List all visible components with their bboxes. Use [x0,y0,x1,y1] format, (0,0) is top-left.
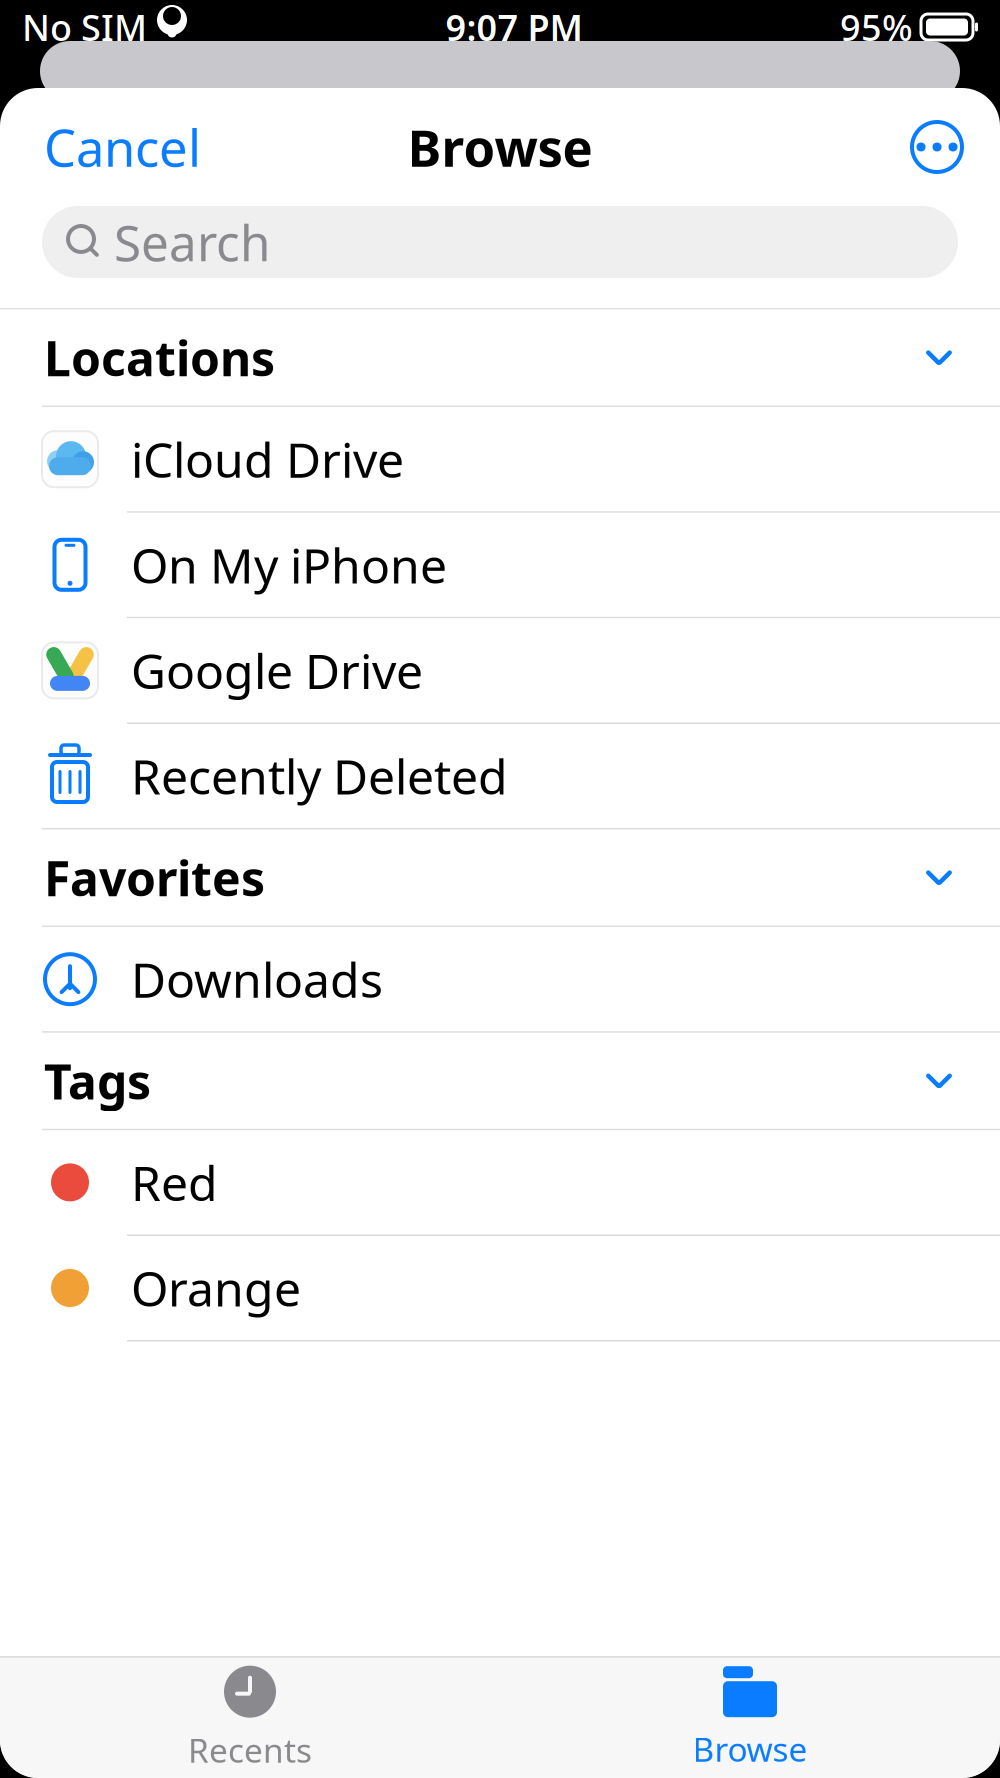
staticText: Red [131,1150,218,1214]
staticText: Cancel [44,113,201,181]
button[interactable]: Tags [0,1033,1000,1129]
staticText: Tags [44,1049,151,1113]
staticText: Favorites [44,846,265,909]
button[interactable]: More options [874,99,1000,195]
staticText: Google Drive [131,638,423,702]
staticText: Browse [692,1727,807,1771]
button[interactable]: Favorites [0,830,1000,926]
staticText: 9:07 PM [445,3,582,51]
staticText: Browse [407,113,592,181]
button[interactable]: Red [0,1130,1000,1234]
staticText: Downloads [131,947,383,1011]
button[interactable]: Orange [0,1236,1000,1340]
staticText: On My iPhone [131,533,447,597]
staticText: iCloud Drive [131,427,404,491]
button[interactable]: Browse [500,1658,1000,1778]
button[interactable]: Cancel [0,99,245,195]
button[interactable]: Recents [0,1658,500,1778]
button[interactable]: Google Drive [0,618,1000,722]
button[interactable]: On My iPhone [0,513,1000,617]
button[interactable]: Search [42,206,958,278]
staticText: Orange [131,1256,301,1320]
staticText: Recently Deleted [131,744,508,808]
button[interactable]: Downloads [0,927,1000,1031]
button[interactable]: Recently Deleted [0,724,1000,828]
staticText: No SIM [22,3,147,51]
button[interactable]: Locations [0,310,1000,406]
staticText: 95% [840,3,913,51]
staticText: Recents [188,1728,312,1772]
staticText: Search [114,209,270,275]
button[interactable]: iCloud Drive [0,407,1000,511]
staticText: Locations [44,326,275,389]
